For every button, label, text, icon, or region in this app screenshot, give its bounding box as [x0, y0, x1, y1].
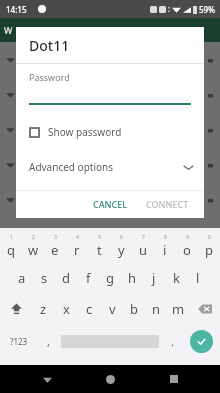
button[interactable]: d [55, 262, 77, 293]
button[interactable]: 3 [44, 231, 66, 262]
button[interactable]: m [167, 293, 189, 324]
button[interactable]: ?123 [0, 324, 38, 358]
button[interactable]: x [55, 293, 78, 324]
staticText: s [41, 269, 48, 287]
staticText: 0 [208, 234, 211, 241]
button[interactable]: Show password [16, 122, 204, 142]
button[interactable]: v [101, 293, 123, 324]
button[interactable]: b [123, 293, 145, 324]
staticText: i [163, 241, 167, 259]
staticText: y [118, 241, 125, 259]
staticText: p [205, 241, 213, 259]
staticText: Password [29, 71, 70, 83]
button[interactable]: Recents [157, 365, 191, 393]
staticText: r [74, 241, 80, 259]
button[interactable]: n [145, 293, 167, 324]
button[interactable]: 4 [66, 231, 88, 262]
staticText: W [4, 24, 13, 36]
staticText: w [28, 241, 39, 259]
button[interactable]: , [38, 324, 58, 358]
button[interactable]: 8 [154, 231, 176, 262]
staticText: 7 [142, 234, 145, 241]
staticText: 14:15 [6, 4, 27, 15]
button[interactable]: j [143, 262, 165, 293]
button[interactable]: 5 [88, 231, 110, 262]
staticText: Peacefrog's Wi-Fi Network [23, 159, 134, 171]
button[interactable]: Advanced options [16, 156, 204, 178]
button[interactable]: Back [30, 365, 64, 393]
staticText: Peacefrog's Wi-Fi Network [23, 194, 134, 206]
staticText: 6 [120, 234, 123, 241]
staticText: Peacefrog's Wi-Fi Network [23, 54, 134, 66]
staticText: Dot11 [29, 36, 70, 55]
button[interactable]: 0 [198, 231, 220, 262]
button[interactable]: h [121, 262, 143, 293]
staticText: e [51, 241, 59, 259]
staticText: d [62, 269, 70, 287]
button[interactable]: s [33, 262, 55, 293]
button[interactable]: CONNECT [139, 194, 196, 214]
staticText: , [47, 334, 50, 349]
staticText: 1 [10, 234, 13, 241]
staticText: m [172, 300, 185, 318]
staticText: Advanced options [29, 160, 114, 174]
staticText: x [63, 300, 70, 318]
staticText: ?123 [10, 336, 28, 347]
staticText: v [109, 300, 116, 318]
staticText: CONNECT [146, 198, 189, 210]
staticText: . [171, 334, 174, 349]
button[interactable]: Backspace [189, 293, 220, 324]
staticText: 2 [32, 234, 35, 241]
staticText: u [139, 241, 148, 259]
button[interactable]: g [99, 262, 121, 293]
button[interactable]: z [32, 293, 55, 324]
staticText: CANCEL [93, 198, 128, 210]
button[interactable]: c [78, 293, 101, 324]
button[interactable]: l [187, 262, 209, 293]
button[interactable]: Home [93, 365, 127, 393]
staticText: h [128, 269, 137, 287]
staticText: Show password [48, 125, 122, 139]
button[interactable]: f [77, 262, 99, 293]
staticText: l [196, 269, 200, 287]
staticText: 5 [98, 234, 101, 241]
staticText: 8 [164, 234, 167, 241]
button[interactable]: 7 [132, 231, 154, 262]
staticText: q [7, 241, 15, 259]
button[interactable]: Shift [0, 293, 32, 324]
button[interactable]: 9 [176, 231, 198, 262]
button[interactable]: 6 [110, 231, 132, 262]
button[interactable]: 1 [0, 231, 22, 262]
staticText: z [40, 300, 47, 318]
staticText: 9 [186, 234, 189, 241]
staticText: g [106, 269, 114, 287]
button[interactable]: CANCEL [86, 194, 135, 214]
staticText: o [183, 241, 191, 259]
staticText: Peacefrog's Wi-Fi Network [23, 124, 134, 136]
staticText: t [97, 241, 102, 259]
staticText: 4 [76, 234, 79, 241]
staticText: 3 [54, 234, 57, 241]
button[interactable]: a [11, 262, 33, 293]
staticText: n [152, 300, 161, 318]
button[interactable]: 2 [22, 231, 44, 262]
button[interactable]: . [162, 324, 182, 358]
staticText: 59% [199, 4, 215, 15]
button[interactable]: k [165, 262, 187, 293]
button[interactable]: Enter [190, 330, 213, 353]
staticText: a [18, 269, 26, 287]
staticText: f [86, 269, 91, 287]
staticText: b [130, 300, 138, 318]
staticText: k [173, 269, 180, 287]
staticText: c [86, 300, 93, 318]
staticText: j [152, 269, 156, 287]
